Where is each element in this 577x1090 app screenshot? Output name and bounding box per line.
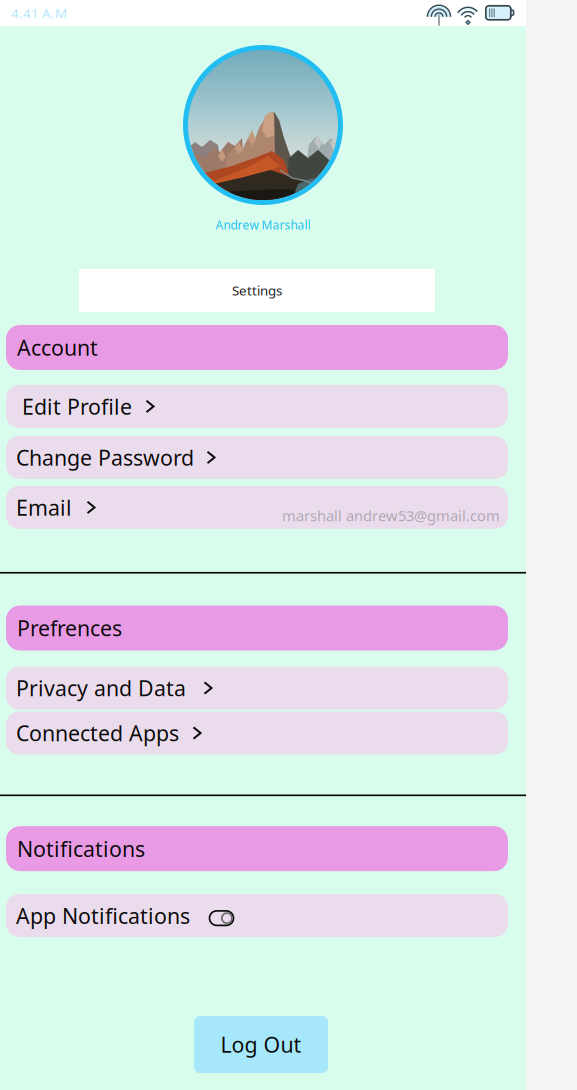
button[interactable]: Log Out [194, 1016, 328, 1073]
staticText: 4.41 A.M [11, 4, 67, 22]
staticText: Change Password [16, 443, 194, 472]
button[interactable]: Connected Apps [6, 711, 508, 754]
button[interactable]: App Notifications [6, 894, 508, 937]
staticText: Log Out [220, 1030, 301, 1059]
staticText: Email [16, 493, 72, 522]
button[interactable]: Edit Profile [6, 385, 508, 428]
button[interactable]: Email [6, 486, 508, 529]
staticText: Connected Apps [16, 719, 179, 747]
staticText: Account [17, 333, 98, 362]
staticText: Andrew Marshall [215, 217, 310, 233]
staticText: Privacy and Data [16, 674, 186, 702]
button[interactable]: Settings [79, 269, 435, 312]
button[interactable]: Change Password [6, 436, 508, 479]
staticText: Notifications [17, 834, 145, 863]
staticText: Edit Profile [22, 392, 132, 421]
staticText: App Notifications [16, 901, 190, 930]
button[interactable]: Privacy and Data [6, 666, 508, 709]
staticText: Settings [232, 282, 282, 299]
staticText: marshall andrew53@gmail.com [282, 506, 500, 525]
staticText: Prefrences [17, 614, 122, 642]
